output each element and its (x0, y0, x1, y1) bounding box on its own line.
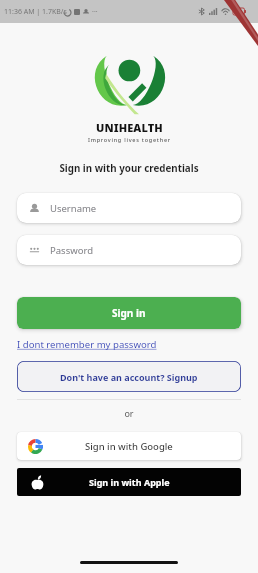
staticText: Don't have an account? Signup (60, 371, 198, 383)
staticText: 11:36 AM | 1.7KB/s (4, 7, 67, 17)
button[interactable]: I dont remember my password (17, 338, 157, 351)
staticText: I dont remember my password (17, 338, 157, 351)
button[interactable]: Don't have an account? Signup (17, 361, 241, 392)
staticText: or (0, 407, 258, 419)
staticText: Sign in with your credentials (0, 162, 258, 175)
staticText: UNIHEALTH (96, 120, 163, 135)
staticText: Sign in with Google (85, 440, 173, 453)
button[interactable]: Password (17, 235, 241, 265)
staticText: Sign in (112, 306, 146, 320)
staticText: Username (50, 202, 97, 215)
button[interactable]: Sign in (17, 297, 241, 329)
staticText: Password (50, 244, 93, 257)
button[interactable]: Sign in with Apple (17, 468, 241, 496)
other: Build flavour ribbon (218, 0, 258, 48)
button[interactable]: Sign in with Google (17, 432, 241, 460)
staticText: Improving lives together (88, 136, 171, 143)
staticText: ··· (92, 7, 98, 17)
staticText: Sign in with Apple (89, 476, 170, 488)
button[interactable]: Username (17, 193, 241, 223)
